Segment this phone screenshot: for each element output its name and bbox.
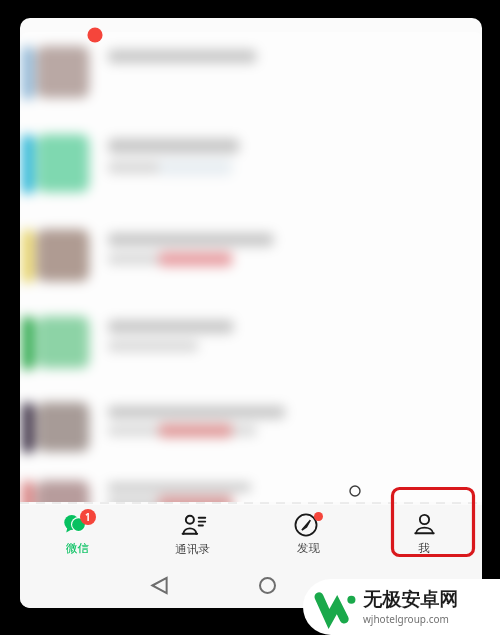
staticText: wjhotelgroup.com [363, 612, 449, 626]
button[interactable]: Back [145, 571, 173, 599]
staticText: 通讯录 [175, 542, 210, 556]
staticText: 微信 [66, 541, 89, 555]
button[interactable]: 通讯录 [135, 512, 250, 556]
button[interactable]: 1 [20, 512, 135, 555]
staticText: 发现 [297, 541, 320, 555]
staticText: 我 [418, 541, 430, 555]
button[interactable]: 发现 [250, 512, 366, 555]
staticText: 1 [85, 510, 91, 524]
button[interactable]: 我 [366, 512, 482, 555]
staticText: 无极安卓网 [363, 588, 458, 612]
button[interactable]: Home [253, 571, 281, 599]
other: Me tab highlighted [391, 487, 475, 557]
